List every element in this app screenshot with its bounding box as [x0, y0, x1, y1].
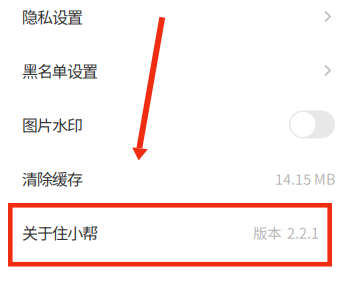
staticText: 版本 2.2.1: [253, 222, 319, 243]
staticText: 隐私设置: [22, 5, 83, 28]
staticText: 14.15 MB: [275, 168, 335, 189]
button[interactable]: 清除缓存: [0, 151, 337, 205]
staticText: 图片水印: [22, 113, 83, 136]
button[interactable]: 隐私设置: [0, 0, 337, 43]
staticText: 黑名单设置: [22, 59, 98, 82]
staticText: 清除缓存: [22, 167, 83, 190]
staticText: 关于住小帮: [22, 221, 98, 244]
button[interactable]: 关于住小帮: [0, 205, 337, 259]
button[interactable]: 黑名单设置: [0, 43, 337, 97]
button[interactable]: 图片水印: [0, 97, 337, 151]
